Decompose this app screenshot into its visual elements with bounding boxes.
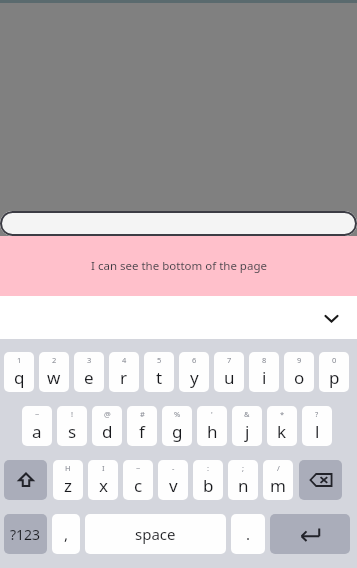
staticText: h: [207, 420, 218, 443]
staticText: ~: [136, 463, 141, 473]
button[interactable]: -: [158, 460, 188, 500]
button[interactable]: ?123: [4, 514, 47, 554]
staticText: 5: [157, 355, 162, 365]
staticText: d: [102, 420, 113, 443]
staticText: 7: [227, 355, 232, 365]
button[interactable]: 7: [214, 352, 244, 392]
button[interactable]: #: [127, 406, 157, 446]
button[interactable]: ~: [22, 406, 52, 446]
staticText: !: [71, 409, 74, 419]
staticText: n: [238, 474, 249, 497]
staticText: &: [244, 409, 250, 419]
button[interactable]: !: [57, 406, 87, 446]
button[interactable]: space: [85, 514, 226, 554]
staticText: @: [104, 409, 111, 419]
button[interactable]: ': [197, 406, 227, 446]
staticText: 8: [262, 355, 267, 365]
staticText: 3: [87, 355, 92, 365]
staticText: p: [329, 366, 340, 389]
staticText: #: [140, 409, 145, 419]
staticText: j: [245, 420, 250, 443]
staticText: z: [64, 474, 72, 497]
button[interactable]: 4: [109, 352, 139, 392]
staticText: r: [120, 366, 128, 389]
staticText: i: [262, 366, 267, 389]
staticText: *: [280, 409, 285, 419]
staticText: f: [139, 420, 145, 443]
button[interactable]: 6: [179, 352, 209, 392]
staticText: m: [270, 474, 286, 497]
staticText: q: [14, 366, 25, 389]
staticText: ?123: [10, 525, 41, 544]
button[interactable]: 5: [144, 352, 174, 392]
staticText: s: [68, 420, 77, 443]
staticText: x: [99, 474, 108, 497]
staticText: ?: [315, 409, 319, 419]
button[interactable]: 8: [249, 352, 279, 392]
staticText: :: [207, 463, 210, 473]
staticText: I: [102, 463, 105, 473]
button[interactable]: 9: [284, 352, 314, 392]
staticText: g: [172, 420, 183, 443]
staticText: e: [84, 366, 94, 389]
button[interactable]: Collapse: [313, 300, 349, 336]
button[interactable]: @: [92, 406, 122, 446]
staticText: /: [277, 463, 280, 473]
button[interactable]: Backspace: [299, 460, 342, 500]
staticText: 2: [52, 355, 57, 365]
staticText: 0: [332, 355, 337, 365]
button[interactable]: I: [88, 460, 118, 500]
staticText: 6: [192, 355, 197, 365]
button[interactable]: ?: [302, 406, 332, 446]
staticText: u: [224, 366, 235, 389]
button[interactable]: 0: [319, 352, 349, 392]
staticText: b: [203, 474, 214, 497]
staticText: ~: [35, 409, 40, 419]
button[interactable]: I can see the bottom of the page: [0, 236, 357, 296]
staticText: ,: [64, 524, 69, 544]
button[interactable]: 1: [4, 352, 34, 392]
button[interactable]: &: [232, 406, 262, 446]
button[interactable]: %: [162, 406, 192, 446]
button[interactable]: /: [263, 460, 293, 500]
staticText: 9: [297, 355, 302, 365]
button[interactable]: Shift: [4, 460, 47, 500]
staticText: l: [315, 420, 320, 443]
staticText: o: [294, 366, 305, 389]
staticText: y: [190, 366, 199, 389]
button[interactable]: ;: [228, 460, 258, 500]
button[interactable]: ~: [123, 460, 153, 500]
staticText: 1: [17, 355, 22, 365]
staticText: w: [47, 366, 61, 389]
button[interactable]: Enter: [270, 514, 350, 554]
staticText: a: [32, 420, 42, 443]
button[interactable]: [0, 211, 357, 236]
staticText: v: [169, 474, 178, 497]
button[interactable]: 3: [74, 352, 104, 392]
staticText: I can see the bottom of the page: [91, 258, 267, 274]
button[interactable]: :: [193, 460, 223, 500]
staticText: t: [156, 366, 163, 389]
staticText: 4: [122, 355, 127, 365]
staticText: -: [172, 463, 175, 473]
staticText: .: [246, 524, 251, 544]
button[interactable]: ,: [52, 514, 80, 554]
button[interactable]: .: [231, 514, 265, 554]
button[interactable]: 2: [39, 352, 69, 392]
staticText: ;: [242, 463, 245, 473]
staticText: c: [134, 474, 143, 497]
staticText: k: [277, 420, 287, 443]
staticText: %: [174, 409, 181, 419]
staticText: ': [211, 409, 213, 419]
button[interactable]: H: [53, 460, 83, 500]
button[interactable]: *: [267, 406, 297, 446]
staticText: space: [135, 524, 176, 544]
staticText: H: [65, 463, 71, 473]
